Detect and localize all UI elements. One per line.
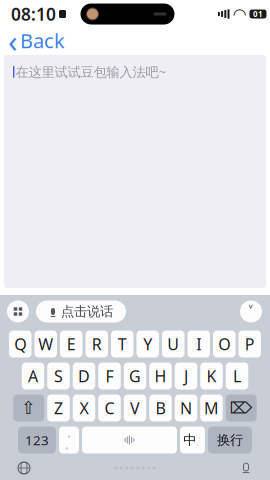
button[interactable]: Space xyxy=(82,426,177,453)
button[interactable]: A xyxy=(22,362,44,389)
staticText: W xyxy=(38,333,53,355)
staticText: ˅ xyxy=(248,301,253,322)
staticText: H xyxy=(154,365,166,387)
staticText: S xyxy=(54,365,63,387)
staticText: ◠ xyxy=(233,5,245,23)
staticText: 。 xyxy=(65,441,73,451)
button[interactable]: G xyxy=(124,362,146,389)
staticText: 123 xyxy=(25,431,49,449)
staticText: R xyxy=(92,333,102,355)
staticText: K xyxy=(206,365,216,387)
button[interactable]: R xyxy=(85,330,108,357)
button[interactable]: B xyxy=(149,394,172,421)
staticText: ， xyxy=(197,433,202,440)
button[interactable]: Delete xyxy=(226,394,257,421)
staticText: 在这里试试豆包输入法吧~ xyxy=(15,63,166,81)
staticText: 。 xyxy=(197,440,202,447)
staticText: 点击说话 xyxy=(61,303,113,320)
staticText: 中 xyxy=(183,432,196,448)
button[interactable]: C xyxy=(98,394,121,421)
staticText: 01 xyxy=(253,9,263,19)
button[interactable]: S xyxy=(47,362,70,389)
button[interactable]: 点击说话 xyxy=(36,300,126,322)
button[interactable]: W xyxy=(34,330,57,357)
staticText: 08:10 xyxy=(11,2,56,25)
staticText: N xyxy=(180,397,192,419)
button[interactable]: U xyxy=(162,330,184,357)
button[interactable]: E xyxy=(60,330,82,357)
button[interactable]: P xyxy=(238,330,261,357)
button[interactable]: Change keyboard xyxy=(11,457,37,479)
button[interactable]: M xyxy=(200,394,223,421)
staticText: E xyxy=(67,333,76,355)
button[interactable]: 123 xyxy=(18,426,56,453)
button[interactable]: V xyxy=(124,394,146,421)
button[interactable]: K xyxy=(200,362,223,389)
staticText: L xyxy=(233,365,241,387)
button[interactable]: Y xyxy=(136,330,159,357)
button[interactable]: 换行 xyxy=(208,426,252,453)
staticText: O xyxy=(218,333,230,355)
staticText: C xyxy=(104,397,114,419)
button[interactable]: Shift xyxy=(13,394,44,421)
button[interactable]: J xyxy=(175,362,197,389)
button[interactable]: H xyxy=(149,362,172,389)
staticText: Q xyxy=(14,333,26,355)
button[interactable]: Hide keyboard xyxy=(240,300,262,322)
button[interactable]: Keyboard panels xyxy=(7,300,29,322)
button[interactable]: Switch input language xyxy=(180,426,205,453)
staticText: ⌦ xyxy=(230,399,253,417)
staticText: Back xyxy=(20,27,65,54)
button[interactable]: F xyxy=(98,362,121,389)
staticText: T xyxy=(118,333,127,355)
button[interactable]: N xyxy=(175,394,197,421)
button[interactable]: Z xyxy=(47,394,70,421)
button[interactable]: X xyxy=(73,394,95,421)
staticText: G xyxy=(129,365,141,387)
button[interactable]: Punctuation xyxy=(59,426,79,453)
staticText: V xyxy=(130,397,140,419)
staticText: ， xyxy=(65,429,73,439)
staticText: P xyxy=(245,333,255,355)
staticText: Z xyxy=(54,397,63,419)
button[interactable]: ‹ xyxy=(0,18,71,63)
staticText: 换行 xyxy=(217,432,243,448)
staticText: I xyxy=(196,333,201,355)
staticText: M xyxy=(204,397,219,419)
staticText: F xyxy=(105,365,113,387)
button[interactable]: I xyxy=(187,330,210,357)
staticText: B xyxy=(155,397,165,419)
staticText: Y xyxy=(143,333,152,355)
staticText: J xyxy=(184,365,188,387)
staticText: X xyxy=(79,397,88,419)
button[interactable]: Dictate xyxy=(233,457,259,479)
button[interactable]: O xyxy=(213,330,235,357)
staticText: A xyxy=(28,365,38,387)
staticText: U xyxy=(167,333,179,355)
button[interactable]: D xyxy=(73,362,95,389)
staticText: ‹ xyxy=(8,20,18,61)
button[interactable]: L xyxy=(226,362,248,389)
button[interactable]: Q xyxy=(9,330,31,357)
staticText: ⇧ xyxy=(21,398,36,418)
staticText: D xyxy=(78,365,90,387)
button[interactable]: 在这里试试豆包输入法吧~ xyxy=(4,55,266,288)
button[interactable]: T xyxy=(111,330,133,357)
